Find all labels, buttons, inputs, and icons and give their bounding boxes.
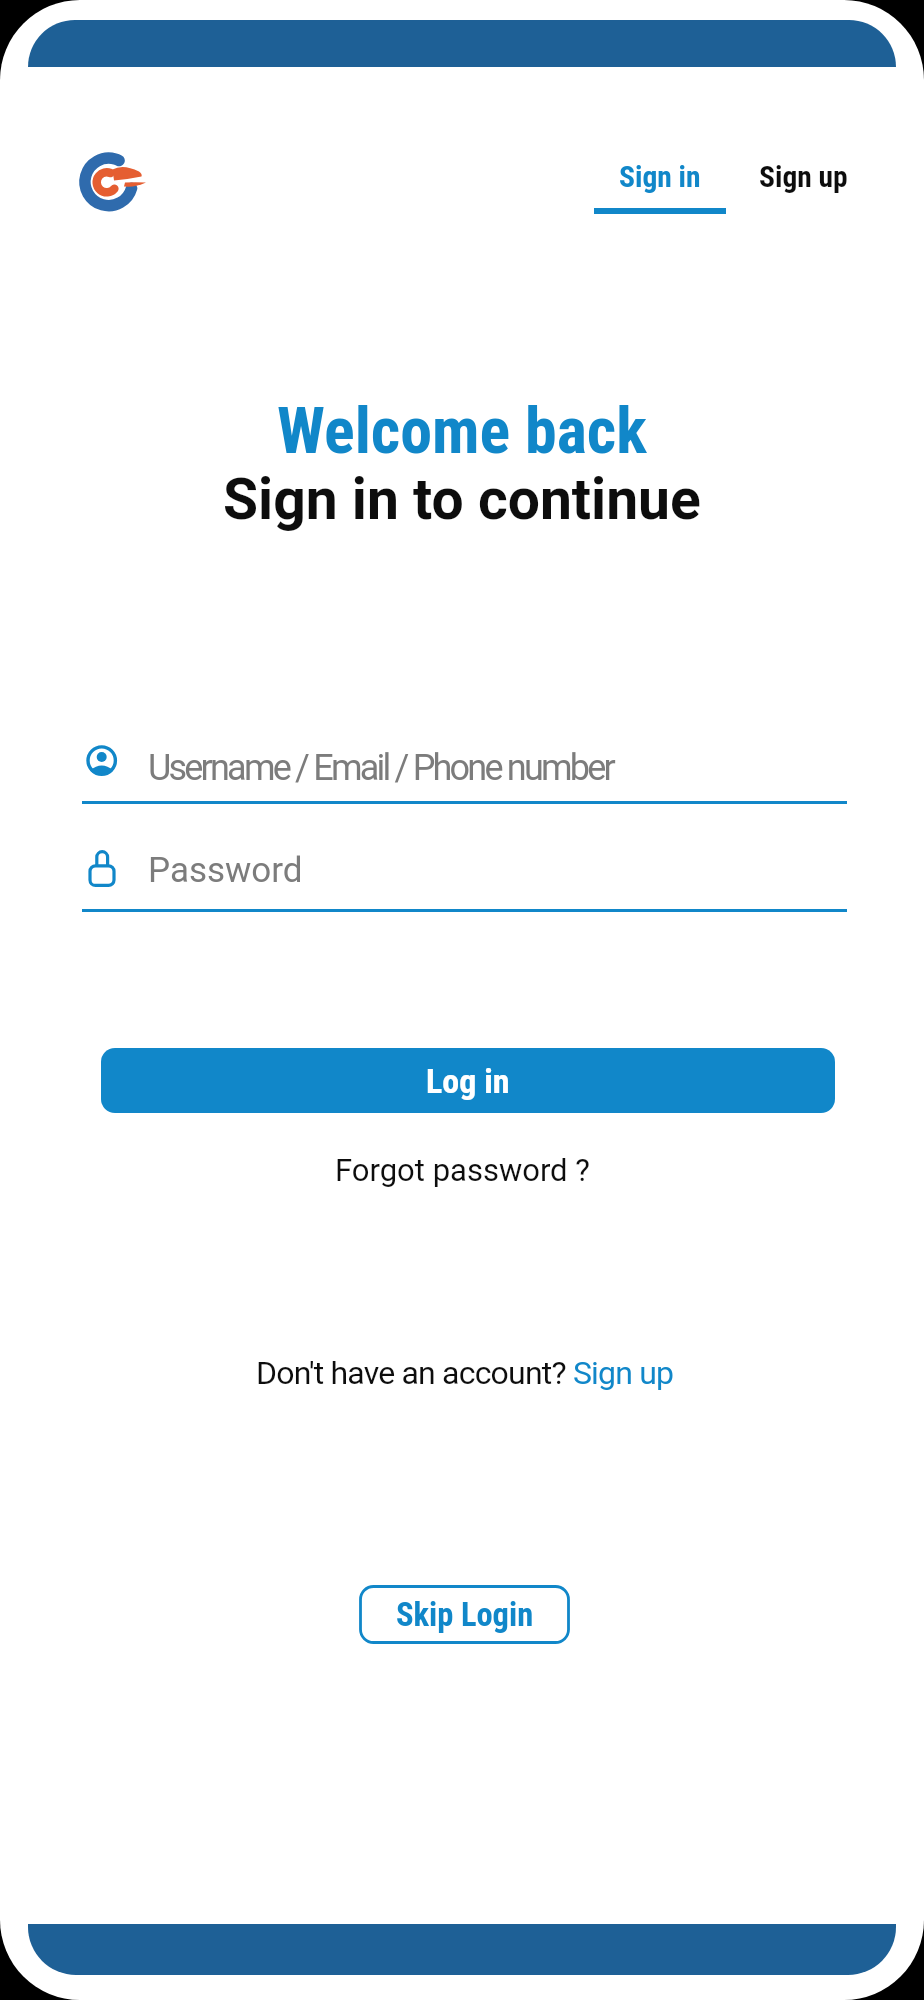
staticText: Sign in to continue xyxy=(223,466,701,533)
button[interactable]: Username / Email / Phone number xyxy=(82,735,847,805)
staticText: Skip Login xyxy=(396,1596,534,1634)
staticText: Log in xyxy=(426,1061,510,1101)
staticText: Sign up xyxy=(759,160,848,195)
button[interactable]: Sign up xyxy=(759,160,848,195)
button[interactable]: Don't have an account? Sign up xyxy=(256,1354,674,1392)
staticText: Sign in xyxy=(619,160,701,195)
button[interactable]: Forgot password ? xyxy=(335,1152,590,1188)
staticText: Password xyxy=(148,850,303,891)
staticText: Welcome back xyxy=(277,394,647,469)
button[interactable]: Log in xyxy=(101,1048,835,1113)
staticText: Forgot password ? xyxy=(335,1152,590,1188)
staticText: Don't have an account? Sign up xyxy=(256,1354,674,1392)
button[interactable]: Sign in xyxy=(594,160,726,214)
button[interactable]: Password xyxy=(82,845,847,915)
button[interactable]: Skip Login xyxy=(359,1585,570,1644)
staticText: Username / Email / Phone number xyxy=(148,747,613,789)
